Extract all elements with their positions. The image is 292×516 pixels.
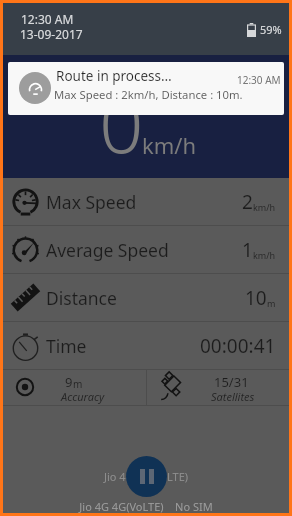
staticText: 0 <box>99 70 144 176</box>
staticText: Jio 4G 4G(VoLTE) No SIM <box>3 499 289 514</box>
staticText: 2 <box>242 189 253 215</box>
staticText: Max Speed <box>46 190 137 214</box>
staticText: m <box>267 297 276 309</box>
staticText: 12:30 AM <box>21 11 74 27</box>
staticText: Distance <box>46 286 117 310</box>
staticText: Satellites <box>211 389 255 404</box>
staticText: 10 <box>245 285 267 311</box>
staticText: 13-09-2017 <box>20 26 83 42</box>
staticText: Jio 4G 4G(VoLTE) <box>3 469 289 484</box>
staticText: 00:00:41 <box>200 333 276 359</box>
staticText: 59% <box>260 22 282 37</box>
button[interactable]: Distance <box>3 274 289 321</box>
staticText: 9 <box>65 373 73 391</box>
button[interactable]: Average Speed <box>3 226 289 273</box>
button[interactable]: 15/31 <box>147 370 289 405</box>
staticText: Route in process… <box>56 67 172 85</box>
staticText: Average Speed <box>46 238 169 262</box>
staticText: 1 <box>242 237 253 263</box>
staticText: 15/31 <box>214 373 249 391</box>
staticText: km/h <box>142 130 197 160</box>
button[interactable]: Route in process… <box>8 62 284 115</box>
button[interactable]: Pause <box>126 456 167 497</box>
staticText: km/h <box>253 201 276 213</box>
staticText: Max Speed : 2km/h, Distance : 10m. <box>54 87 243 102</box>
staticText: Accuracy <box>61 389 105 404</box>
staticText: km/h <box>253 249 276 261</box>
button[interactable]: 9 <box>3 370 146 405</box>
button[interactable]: Max Speed <box>3 178 289 225</box>
button[interactable]: Time <box>3 322 289 369</box>
staticText: Time <box>46 334 87 358</box>
staticText: 12:30 AM <box>237 73 281 87</box>
staticText: m <box>73 377 83 391</box>
